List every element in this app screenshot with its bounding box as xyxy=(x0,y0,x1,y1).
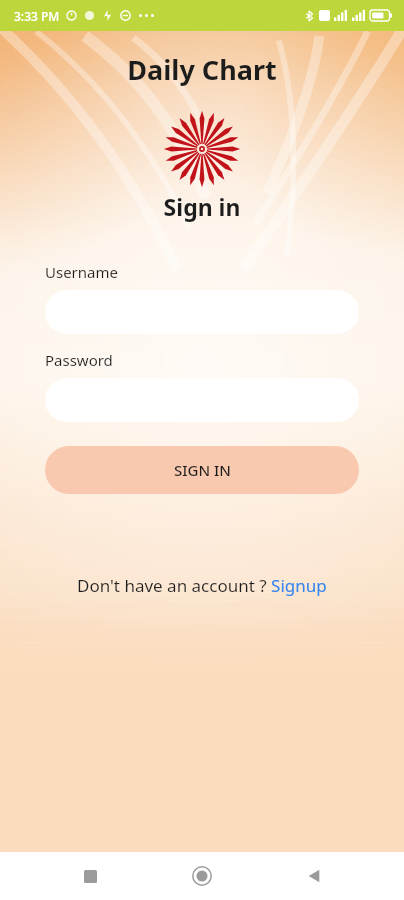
button[interactable]: Back xyxy=(292,854,336,898)
button[interactable]: SIGN IN xyxy=(45,446,359,494)
staticText: Daily Chart xyxy=(0,51,404,88)
button[interactable]: Recents xyxy=(68,854,112,898)
staticText: Username xyxy=(45,262,118,282)
staticText: Sign in xyxy=(0,191,404,222)
staticText: Password xyxy=(45,350,113,370)
button[interactable]: Text field xyxy=(45,378,359,422)
button[interactable]: Home xyxy=(180,854,224,898)
staticText: SIGN IN xyxy=(174,460,231,480)
staticText: 3:33 PM xyxy=(14,8,60,24)
button[interactable]: Don't have an account ? Signup xyxy=(73,570,331,601)
